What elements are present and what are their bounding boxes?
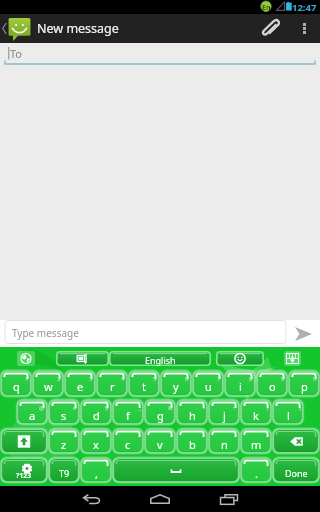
staticText: & (168, 404, 173, 412)
staticText: 1 (25, 375, 29, 383)
button[interactable]: t (128, 370, 160, 397)
button[interactable]: z (48, 428, 80, 454)
button[interactable]: To (0, 43, 320, 65)
staticText: - (203, 404, 205, 412)
button[interactable]: Symbols (0, 457, 48, 483)
staticText: En (262, 3, 271, 13)
button[interactable]: k (240, 399, 272, 425)
button[interactable]: Space (112, 457, 240, 483)
button[interactable]: Switch language (17, 351, 35, 366)
staticText: @ (39, 404, 45, 412)
staticText: # (73, 404, 77, 412)
button[interactable]: j (208, 399, 240, 425)
staticText: f (126, 408, 130, 423)
staticText: h (189, 408, 196, 423)
staticText: 3 (89, 375, 93, 383)
staticText: d (93, 408, 100, 423)
button[interactable]: d (80, 399, 112, 425)
staticText: 0 (313, 375, 317, 383)
staticText: ) (299, 404, 301, 412)
staticText: ?123 (16, 471, 32, 481)
button[interactable]: f (112, 399, 144, 425)
button[interactable]: Done (272, 457, 320, 483)
staticText: 2 (57, 375, 61, 383)
button[interactable]: y (160, 370, 192, 397)
staticText: 9 (281, 375, 285, 383)
button[interactable]: T9 (48, 457, 80, 483)
staticText: u (205, 379, 212, 394)
staticText: i (239, 379, 242, 394)
staticText: . (255, 466, 258, 481)
staticText: English (145, 354, 176, 366)
staticText: v (157, 437, 163, 452)
button[interactable]: Shift (0, 428, 48, 454)
staticText: a (29, 408, 36, 423)
button[interactable]: Hide keyboard (284, 351, 301, 366)
button[interactable]: r (96, 370, 128, 397)
staticText: e (77, 379, 84, 394)
staticText: _ (138, 404, 141, 412)
button[interactable]: e (64, 370, 96, 397)
staticText: 7 (217, 375, 221, 383)
button[interactable]: v (144, 428, 176, 454)
staticText: Done (285, 467, 308, 479)
staticText: o (269, 379, 276, 394)
staticText: 5 (153, 375, 157, 383)
staticText: t (142, 379, 146, 394)
button[interactable]: Navigate up (0, 14, 31, 43)
staticText: g (157, 408, 164, 423)
staticText: q (13, 379, 20, 394)
button[interactable]: Attach (252, 14, 288, 43)
button[interactable]: g (144, 399, 176, 425)
staticText: + (233, 404, 237, 412)
button[interactable]: . (240, 457, 272, 483)
staticText: b (189, 437, 196, 452)
staticText: 4 (121, 375, 125, 383)
button[interactable]: l (272, 399, 304, 425)
staticText: n (221, 437, 228, 452)
button[interactable]: m (240, 428, 272, 454)
staticText: 6 (185, 375, 189, 383)
staticText: w (44, 379, 53, 394)
staticText: p (301, 379, 308, 394)
staticText: New message (37, 20, 119, 37)
button[interactable]: Emoji (216, 351, 264, 366)
button[interactable]: Clipboard (56, 351, 109, 366)
staticText: Type message (12, 326, 79, 340)
button[interactable]: s (48, 399, 80, 425)
button[interactable]: u (192, 370, 224, 397)
button[interactable]: o (256, 370, 288, 397)
button[interactable]: , (80, 457, 112, 483)
staticText: s (61, 408, 67, 423)
button[interactable]: Backspace (272, 428, 320, 454)
button[interactable]: More options (288, 14, 320, 43)
staticText: To (10, 46, 23, 61)
button[interactable]: x (80, 428, 112, 454)
staticText: r (110, 379, 115, 394)
button[interactable]: Back (64, 486, 120, 512)
staticText: ( (267, 404, 269, 412)
staticText: 12:47 (292, 1, 317, 14)
button[interactable]: w (32, 370, 64, 397)
button[interactable]: English (109, 351, 211, 366)
button[interactable]: h (176, 399, 208, 425)
button[interactable]: n (208, 428, 240, 454)
button[interactable]: Recent apps (201, 486, 257, 512)
button[interactable]: Send (286, 320, 320, 347)
staticText: T9 (59, 467, 70, 479)
button[interactable]: c (112, 428, 144, 454)
button[interactable]: b (176, 428, 208, 454)
button[interactable]: i (224, 370, 256, 397)
staticText: y (173, 379, 179, 394)
staticText: k (253, 408, 259, 423)
staticText: x (93, 437, 99, 452)
button[interactable]: q (0, 370, 32, 397)
staticText: j (223, 408, 226, 423)
button[interactable]: a (16, 399, 48, 425)
staticText: m (251, 437, 262, 452)
staticText: z (61, 437, 67, 452)
staticText: c (125, 437, 131, 452)
button[interactable]: p (288, 370, 320, 397)
button[interactable]: Home (132, 486, 188, 512)
staticText: , (95, 466, 98, 481)
